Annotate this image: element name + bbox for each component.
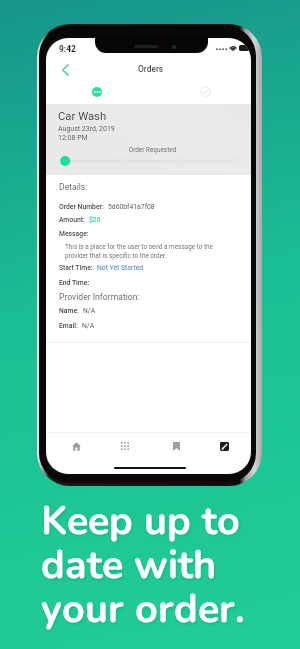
button[interactable]: Order requested [92,87,102,97]
staticText: $20 [89,216,101,224]
button[interactable]: Back [54,59,76,81]
staticText: N/A [83,307,96,315]
staticText: 12:08 PM [58,134,88,142]
staticText: Start Time: [59,264,93,272]
button[interactable]: Saved [165,435,187,457]
staticText: Email: [59,322,78,330]
staticText: Name: [59,307,79,315]
staticText: Order Number: [59,203,104,211]
staticText: Orders [138,64,164,74]
staticText: Message: [59,230,89,238]
staticText: Order Requested [122,146,183,154]
staticText: August 23rd, 2019 [58,125,115,133]
staticText: N/A [82,322,95,330]
staticText: Amount: [59,216,85,224]
button[interactable]: Order completed [200,86,211,97]
staticText: Details: [59,182,88,192]
staticText: Provider Information: [59,292,140,302]
staticText: Not Yet Started [97,264,144,272]
staticText: 9:42 [59,44,76,54]
button[interactable]: Browse [114,435,136,457]
button[interactable]: Home [65,435,87,457]
button[interactable]: Orders [213,435,235,457]
staticText: Car Wash [58,110,107,123]
staticText: End Time: [59,279,90,287]
staticText: 5d60bf41a7f08 [108,203,155,211]
staticText: This is a place for the user to send a m… [65,243,213,259]
